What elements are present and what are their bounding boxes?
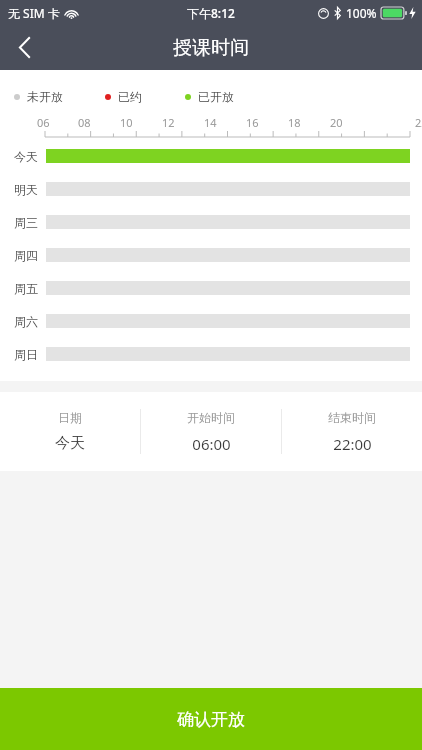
button[interactable]: 未开放 bbox=[14, 89, 63, 104]
staticText: 08 bbox=[78, 115, 91, 130]
staticText: 无 SIM 卡 bbox=[8, 5, 60, 21]
staticText: 100% bbox=[346, 5, 377, 21]
staticText: 下午8:12 bbox=[187, 5, 235, 21]
staticText: 06 bbox=[37, 115, 50, 130]
button[interactable]: 周五 bbox=[0, 281, 422, 295]
staticText: 今天 bbox=[14, 149, 38, 163]
staticText: 确认开放 bbox=[177, 709, 245, 730]
button[interactable]: 周三 bbox=[0, 215, 422, 229]
staticText: 开始时间 bbox=[187, 410, 235, 425]
button[interactable]: 已约 bbox=[105, 89, 142, 104]
staticText: 周六 bbox=[14, 314, 38, 328]
staticText: 明天 bbox=[14, 182, 38, 196]
button[interactable]: 周日 bbox=[0, 347, 422, 361]
staticText: 16 bbox=[246, 115, 259, 130]
staticText: 已开放 bbox=[198, 89, 234, 104]
staticText: 今天 bbox=[55, 434, 85, 453]
button[interactable]: 周四 bbox=[0, 248, 422, 262]
staticText: 06:00 bbox=[192, 434, 231, 454]
button[interactable]: 今天 bbox=[0, 149, 422, 163]
button[interactable]: 结束时间 bbox=[282, 410, 422, 454]
staticText: 未开放 bbox=[27, 89, 63, 104]
staticText: 周五 bbox=[14, 281, 38, 295]
staticText: 20 bbox=[330, 115, 343, 130]
button[interactable]: 确认开放 bbox=[0, 688, 422, 750]
staticText: 周三 bbox=[14, 215, 38, 229]
staticText: 周日 bbox=[14, 347, 38, 361]
staticText: 18 bbox=[288, 115, 301, 130]
staticText: 授课时间 bbox=[173, 36, 249, 60]
staticText: 22 bbox=[415, 115, 422, 130]
staticText: 14 bbox=[204, 115, 217, 130]
staticText: 已约 bbox=[118, 89, 142, 104]
button[interactable]: 已开放 bbox=[185, 89, 234, 104]
button[interactable]: 明天 bbox=[0, 182, 422, 196]
staticText: 10 bbox=[120, 115, 133, 130]
staticText: 12 bbox=[162, 115, 175, 130]
staticText: 周四 bbox=[14, 248, 38, 262]
button[interactable]: 日期 bbox=[0, 410, 140, 453]
staticText: 22:00 bbox=[333, 434, 372, 454]
staticText: 结束时间 bbox=[328, 410, 376, 425]
button[interactable]: 返回 bbox=[0, 25, 48, 70]
button[interactable]: 周六 bbox=[0, 314, 422, 328]
button[interactable]: 开始时间 bbox=[141, 410, 281, 454]
staticText: 日期 bbox=[58, 410, 82, 425]
